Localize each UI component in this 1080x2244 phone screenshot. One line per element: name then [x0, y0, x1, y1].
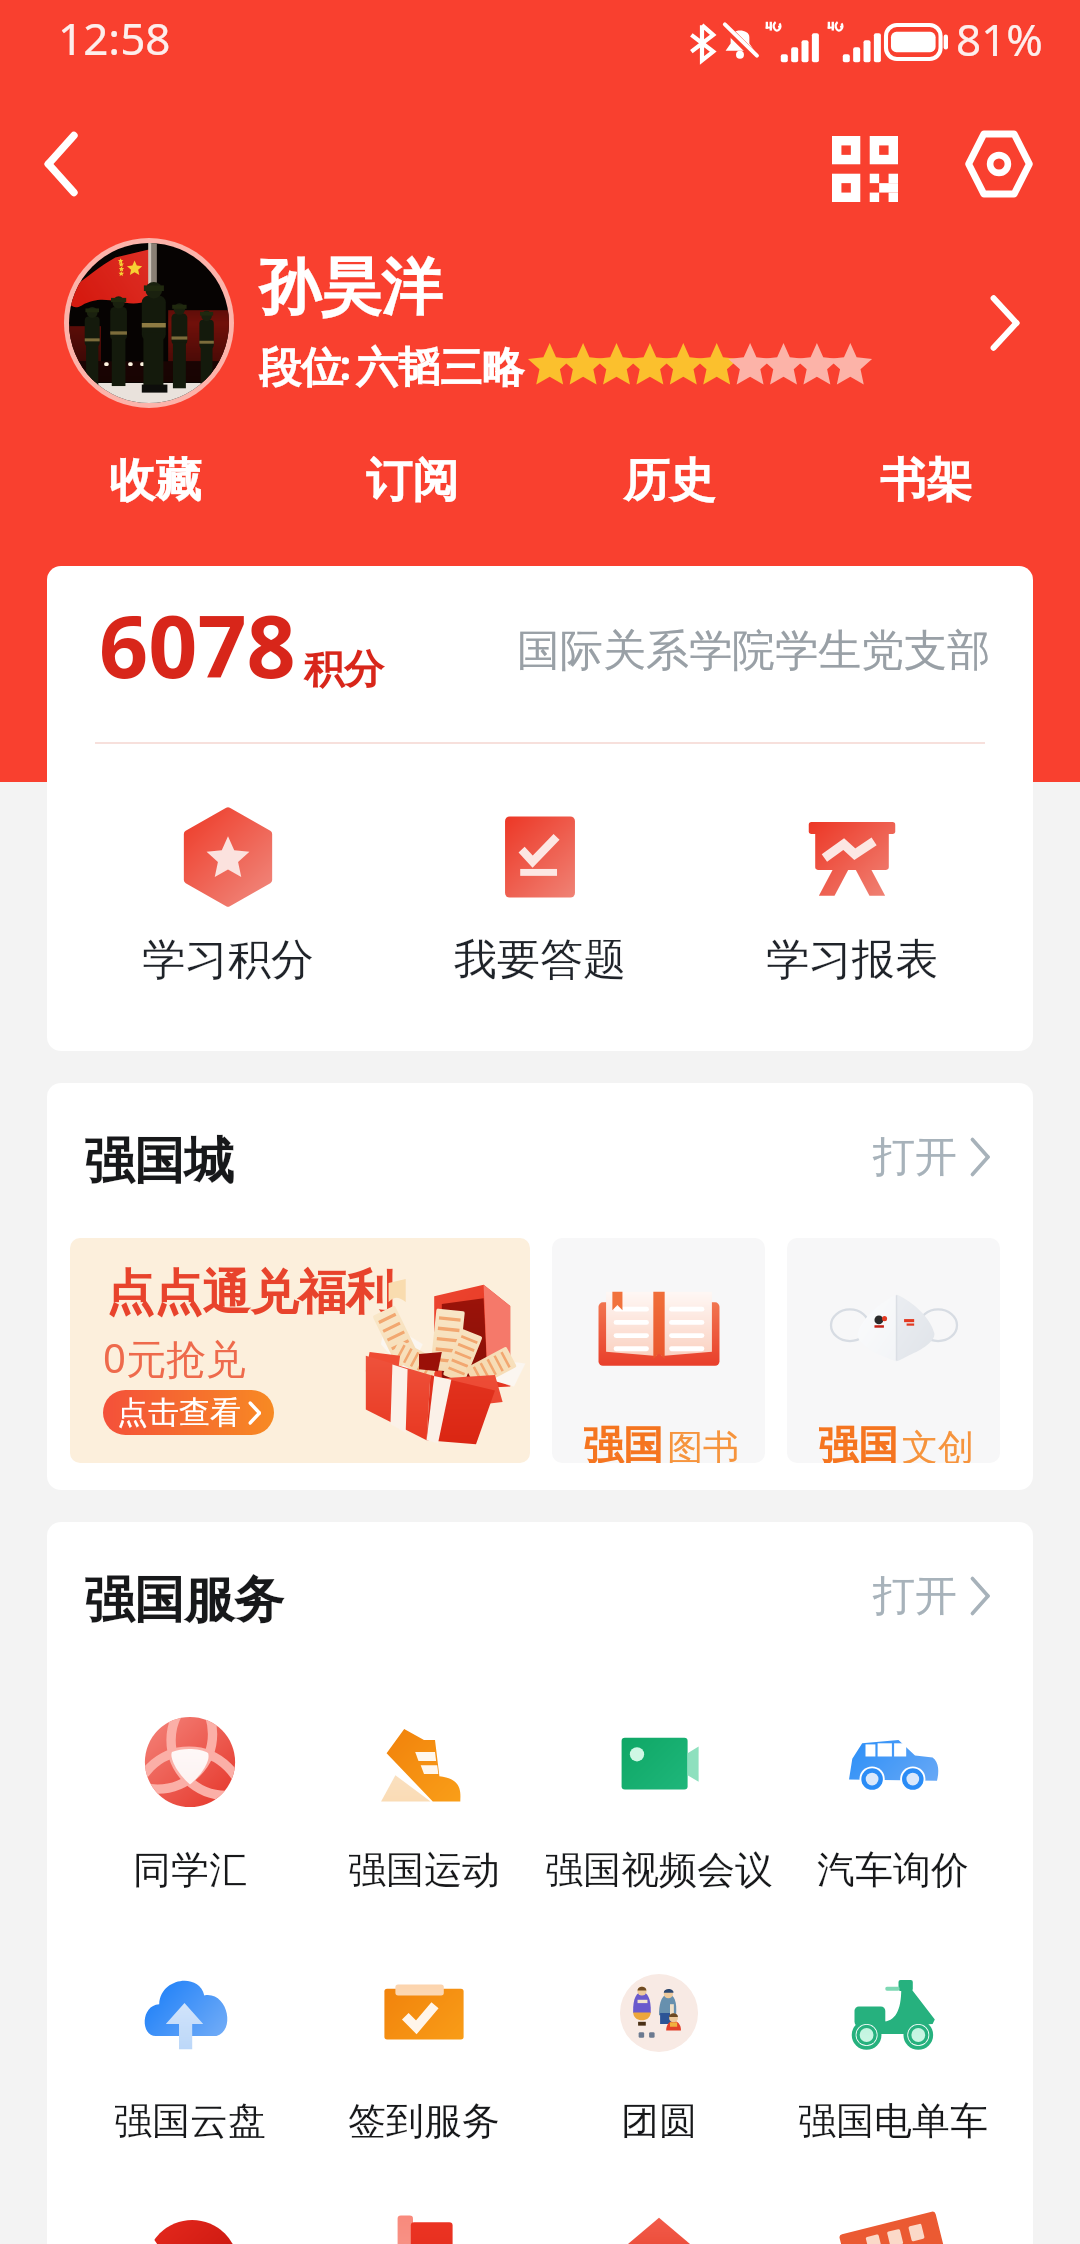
button[interactable]: 强国电单车	[773, 1958, 1013, 2145]
button[interactable]: 点点通兑福利	[70, 1238, 530, 1463]
staticText: 签到服务	[348, 2097, 500, 2145]
staticText: 同学汇	[133, 1846, 247, 1894]
staticText: 强国城	[84, 1130, 234, 1193]
staticText: :	[339, 335, 352, 392]
button[interactable]: 汽车询价	[773, 1707, 1013, 1894]
button[interactable]: 学习报表	[732, 811, 972, 987]
staticText: 团圆	[621, 2097, 697, 2145]
button[interactable]: Settings	[946, 111, 1052, 217]
staticText: 订阅	[366, 452, 458, 510]
button[interactable]: 强国视频会议	[539, 1707, 779, 1894]
staticText: 0元抢兑	[103, 1330, 246, 1385]
staticText: 强国电单车	[798, 2097, 988, 2145]
button[interactable]: 强国	[787, 1238, 1000, 1463]
button[interactable]: 强国	[552, 1238, 765, 1463]
button[interactable]: 书架	[816, 436, 1036, 526]
staticText: 六韬三略	[356, 342, 524, 395]
button[interactable]	[20, 234, 1060, 414]
button[interactable]: 订阅	[302, 436, 522, 526]
button[interactable]	[70, 2209, 310, 2244]
staticText: 图书	[667, 1425, 739, 1463]
button[interactable]	[304, 2209, 544, 2244]
staticText: 汽车询价	[817, 1846, 969, 1894]
staticText: 我要答题	[454, 933, 626, 987]
staticText: 81%	[956, 9, 1043, 69]
button[interactable]	[773, 2209, 1013, 2244]
button[interactable]: 点击查看	[103, 1390, 274, 1435]
button[interactable]: 我要答题	[420, 811, 660, 987]
button[interactable]: 同学汇	[70, 1707, 310, 1894]
staticText: 6078	[99, 586, 296, 703]
button[interactable]: Scan QR code	[812, 116, 918, 222]
staticText: 强国服务	[84, 1569, 284, 1632]
staticText: 学习报表	[766, 933, 938, 987]
staticText: 强国运动	[348, 1846, 500, 1894]
staticText: 强国	[818, 1420, 898, 1463]
button[interactable]: 强国运动	[304, 1707, 544, 1894]
staticText: 点点通兑福利	[106, 1263, 394, 1323]
staticText: 强国云盘	[114, 2097, 266, 2145]
staticText: 打开	[873, 1131, 957, 1184]
staticText: 积分	[304, 644, 384, 694]
button[interactable]: 历史	[559, 436, 779, 526]
staticText: 强国	[583, 1420, 663, 1463]
staticText: 12:58	[58, 8, 171, 68]
button[interactable]: 团圆	[539, 1958, 779, 2145]
staticText: 书架	[880, 452, 972, 510]
button[interactable]: 签到服务	[304, 1958, 544, 2145]
button[interactable]: 学习积分	[108, 811, 348, 987]
staticText: 打开	[873, 1570, 957, 1623]
staticText: 文创	[902, 1425, 974, 1463]
staticText: 收藏	[109, 452, 201, 510]
staticText: 孙昊洋	[259, 249, 442, 326]
button[interactable]: 打开	[865, 1117, 1025, 1197]
button[interactable]: 强国云盘	[70, 1958, 310, 2145]
staticText: 国际关系学院学生党支部	[517, 624, 990, 678]
staticText: 学习积分	[142, 933, 314, 987]
button[interactable]: 打开	[865, 1556, 1025, 1636]
staticText: 强国视频会议	[545, 1846, 773, 1894]
button[interactable]	[539, 2209, 779, 2244]
staticText: 点击查看	[117, 1393, 241, 1432]
staticText: 历史	[623, 452, 715, 510]
staticText: 段位	[259, 342, 343, 395]
button[interactable]: 收藏	[45, 436, 265, 526]
button[interactable]: Back	[8, 111, 114, 217]
